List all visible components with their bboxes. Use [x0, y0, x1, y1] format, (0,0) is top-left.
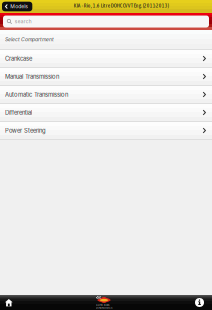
button[interactable]: Home [2, 295, 19, 310]
staticText: Differential [5, 109, 32, 116]
button[interactable]: Crankcase [0, 50, 212, 68]
staticText: AUTO DATA DIAGNOSTICS [96, 304, 112, 309]
button[interactable]: Info [189, 296, 210, 309]
staticText: Crankcase [5, 55, 32, 62]
staticText: Select Compartment [5, 36, 54, 42]
staticText: Manual Transmission [5, 73, 59, 80]
button[interactable]: Automatic Transmission [0, 86, 212, 104]
staticText: Automatic Transmission [5, 91, 68, 98]
staticText: Models [10, 3, 28, 9]
button[interactable]: Power Steering [0, 122, 212, 140]
button[interactable]: Models [2, 2, 32, 11]
staticText: search [15, 19, 32, 24]
button[interactable]: Differential [0, 104, 212, 122]
button[interactable]: Manual Transmission [0, 68, 212, 86]
staticText: KIA - Rio, 1.6 Litre DOHC CVVT Eng. (201… [74, 2, 169, 8]
staticText: Power Steering [5, 127, 46, 134]
